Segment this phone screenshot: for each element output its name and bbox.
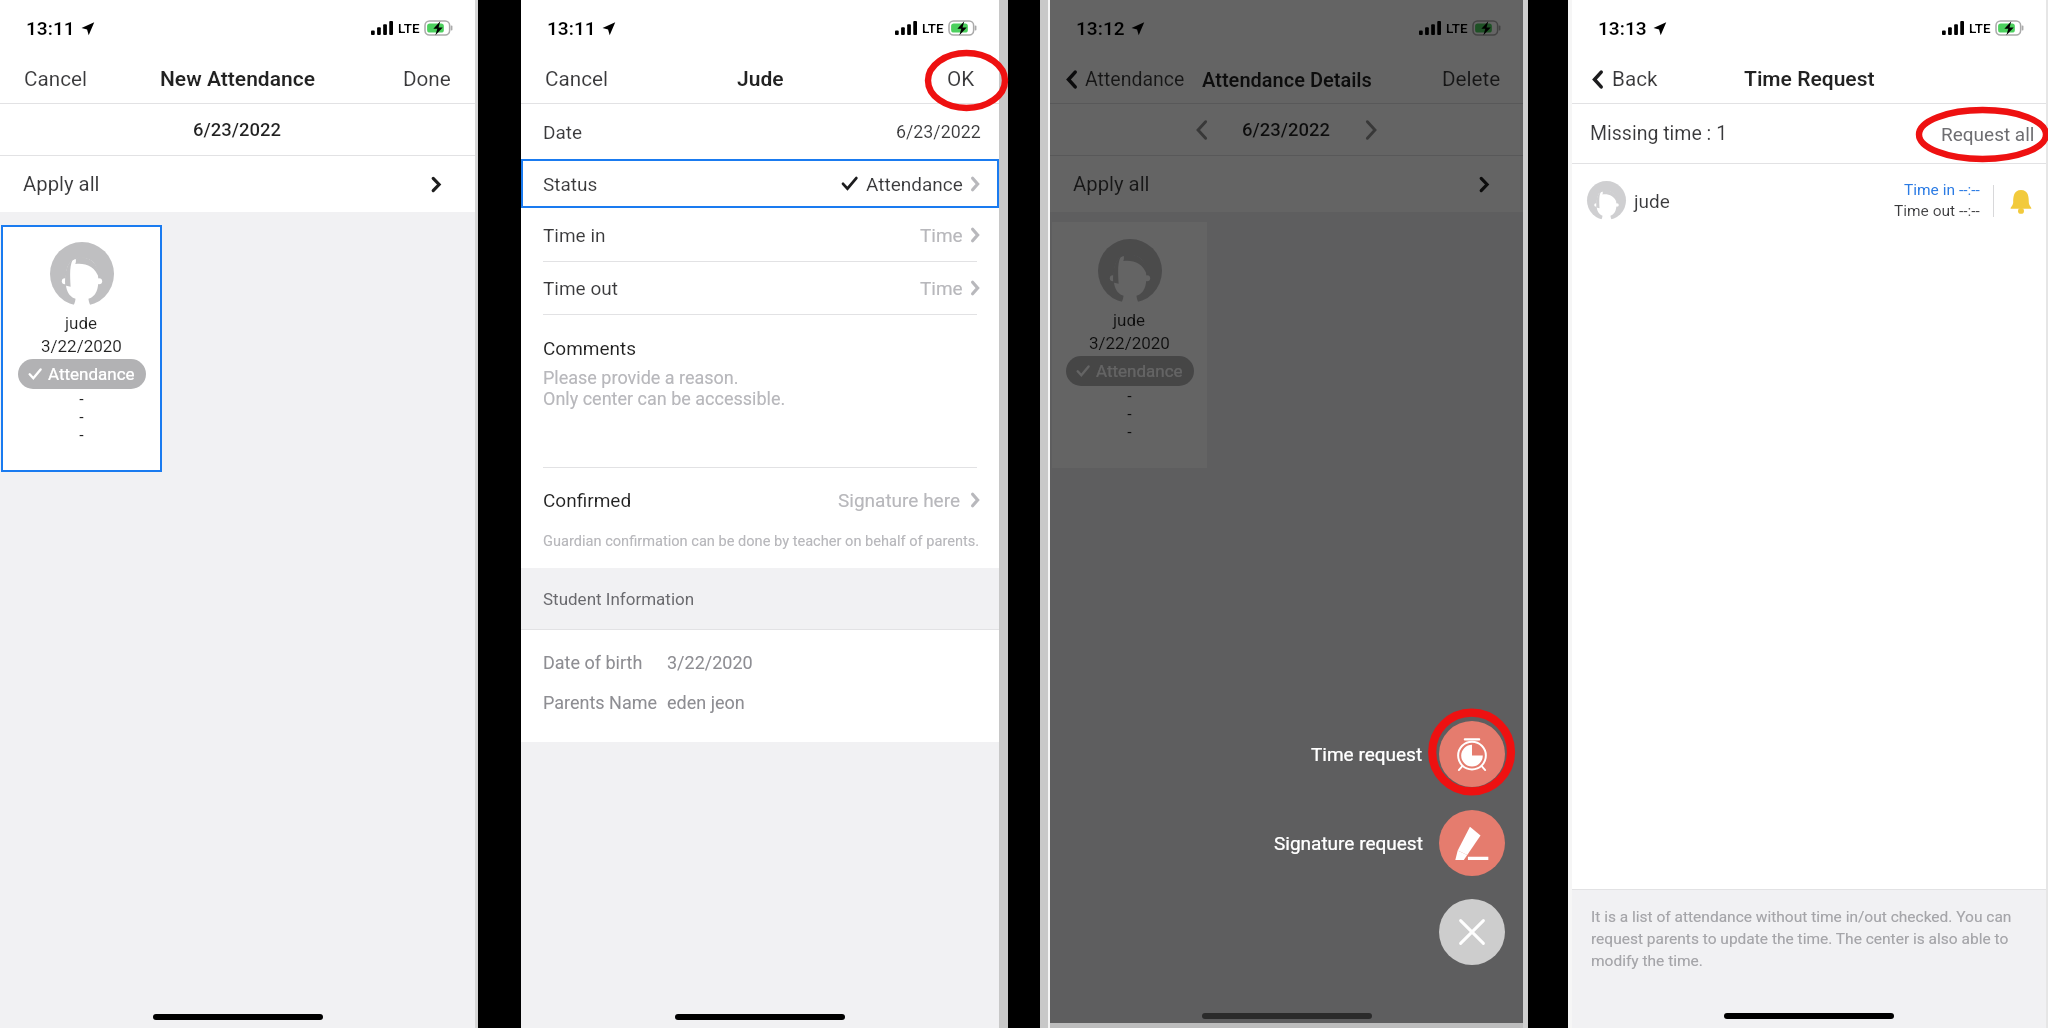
staticText: - - - bbox=[79, 390, 84, 445]
staticText: Cancel bbox=[24, 67, 87, 91]
staticText: Time bbox=[920, 224, 963, 246]
button[interactable]: Request all bbox=[1933, 117, 2035, 151]
staticText: Attendance bbox=[1096, 361, 1183, 381]
staticText: Time in bbox=[1904, 181, 1959, 199]
staticText: Guardian confirmation can be done by tea… bbox=[543, 532, 980, 549]
staticText: Delete bbox=[1442, 67, 1501, 91]
staticText: Time in bbox=[543, 224, 606, 246]
staticText: Parents Name bbox=[543, 692, 667, 713]
staticText: eden jeon bbox=[667, 692, 745, 713]
button[interactable]: jude bbox=[1587, 164, 2034, 237]
staticText: Signature here bbox=[838, 489, 961, 511]
staticText: jude bbox=[65, 313, 98, 333]
staticText: Apply all bbox=[1073, 172, 1150, 196]
button[interactable]: Signature request bbox=[1439, 810, 1505, 876]
button[interactable]: Time in bbox=[543, 208, 981, 261]
staticText: Attendance bbox=[48, 364, 135, 384]
staticText: 3/22/2020 bbox=[1089, 333, 1170, 353]
staticText: LTE bbox=[922, 20, 944, 36]
staticText: Signature request bbox=[1274, 832, 1423, 854]
button[interactable]: OK bbox=[923, 59, 999, 99]
staticText: 13:13 bbox=[1598, 17, 1647, 39]
staticText: Attendance Details bbox=[1202, 68, 1372, 91]
button[interactable]: Confirmed bbox=[543, 468, 981, 532]
staticText: Date bbox=[543, 121, 583, 143]
staticText: Back bbox=[1612, 67, 1658, 91]
staticText: Time Request bbox=[1744, 67, 1875, 92]
button[interactable]: Cancel bbox=[521, 59, 632, 99]
button[interactable]: Send reminder bbox=[2008, 188, 2034, 214]
staticText: jude bbox=[1634, 190, 1670, 212]
staticText: 3/22/2020 bbox=[667, 652, 753, 673]
button[interactable]: Date bbox=[543, 104, 981, 159]
staticText: Attendance bbox=[1085, 68, 1185, 91]
staticText: --:-- bbox=[1959, 181, 1980, 199]
staticText: Time request bbox=[1311, 743, 1423, 765]
staticText: - - - bbox=[1127, 387, 1132, 442]
staticText: 6/23/2022 bbox=[193, 119, 282, 141]
button[interactable]: Delete bbox=[1420, 59, 1523, 99]
staticText: Time out bbox=[543, 277, 618, 299]
staticText: LTE bbox=[398, 20, 420, 36]
button[interactable]: Previous day bbox=[1193, 117, 1211, 143]
staticText: Time bbox=[920, 277, 963, 299]
staticText: 6/23/2022 bbox=[896, 121, 981, 142]
staticText: Confirmed bbox=[543, 489, 632, 511]
button[interactable]: Close menu bbox=[1439, 899, 1505, 965]
button[interactable]: Attendance bbox=[1050, 68, 1193, 91]
staticText: 3/22/2020 bbox=[41, 336, 122, 356]
button[interactable]: jude bbox=[1, 225, 162, 472]
staticText: Attendance bbox=[866, 173, 963, 195]
button[interactable]: Status bbox=[521, 159, 999, 208]
button[interactable]: Apply all bbox=[0, 156, 475, 212]
staticText: 6/23/2022 bbox=[1242, 119, 1331, 141]
staticText: Comments bbox=[543, 337, 637, 359]
button[interactable]: 6/23/2022 bbox=[0, 104, 475, 155]
staticText: Date of birth bbox=[543, 652, 667, 673]
staticText: Cancel bbox=[545, 67, 608, 91]
staticText: jude bbox=[1113, 310, 1146, 330]
button[interactable]: jude bbox=[1052, 222, 1207, 468]
staticText: LTE bbox=[1969, 20, 1991, 36]
staticText: --:-- bbox=[1959, 202, 1980, 220]
staticText: Apply all bbox=[23, 172, 100, 196]
staticText: Time out bbox=[1894, 202, 1959, 220]
staticText: Jude bbox=[737, 67, 784, 92]
button[interactable]: Apply all bbox=[1050, 156, 1523, 212]
staticText: Status bbox=[543, 173, 598, 195]
staticText: Student Information bbox=[543, 589, 695, 609]
staticText: Please provide a reason. Only center can… bbox=[543, 367, 786, 410]
staticText: It is a list of attendance without time … bbox=[1591, 908, 2032, 970]
staticText: OK bbox=[947, 67, 975, 91]
staticText: 13:12 bbox=[1076, 17, 1125, 39]
button[interactable]: Cancel bbox=[0, 59, 111, 99]
staticText: LTE bbox=[1446, 20, 1468, 36]
button[interactable]: Time out bbox=[543, 262, 981, 314]
button[interactable]: Time request bbox=[1439, 721, 1505, 787]
staticText: Request all bbox=[1941, 123, 2035, 145]
staticText: 13:11 bbox=[547, 17, 596, 39]
button[interactable]: Next day bbox=[1362, 117, 1380, 143]
staticText: New Attendance bbox=[160, 67, 315, 92]
staticText: Missing time : 1 bbox=[1590, 122, 1728, 145]
staticText: Done bbox=[403, 67, 451, 91]
staticText: 13:11 bbox=[26, 17, 75, 39]
button[interactable]: Done bbox=[379, 59, 475, 99]
button[interactable]: Back bbox=[1572, 67, 1668, 91]
